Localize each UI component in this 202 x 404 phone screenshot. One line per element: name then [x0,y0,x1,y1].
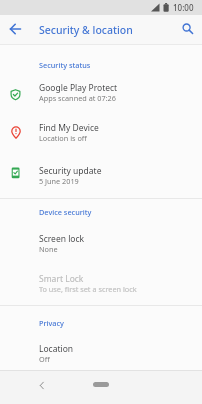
staticText: Location is off [39,133,87,143]
button[interactable] [34,378,50,394]
staticText: Privacy [39,318,64,328]
button[interactable] [6,20,24,38]
button[interactable]: Security update [0,158,202,198]
staticText: Device security [39,207,92,217]
button[interactable] [179,20,197,38]
staticText: Off [39,354,50,364]
staticText: Screen lock [39,233,85,245]
button[interactable]: Screen lock [0,228,202,266]
staticText: 5 June 2019 [39,176,79,186]
button[interactable]: Google Play Protect [0,78,202,118]
button[interactable] [93,382,109,387]
button[interactable]: Find My Device [0,118,202,158]
staticText: Smart Lock [39,273,84,285]
button[interactable]: Smart Lock [0,268,202,306]
staticText: Apps scanned at 07:26 [39,93,116,103]
staticText: None [39,244,58,254]
staticText: 10:00 [173,2,194,13]
staticText: Security update [39,165,102,177]
staticText: Google Play Protect [39,82,118,94]
staticText: Location [39,343,74,355]
staticText: Security & location [39,23,133,37]
button[interactable]: Location [0,339,202,370]
staticText: Find My Device [39,122,99,134]
staticText: Security status [39,60,91,70]
staticText: To use, first set a screen lock [39,284,137,294]
